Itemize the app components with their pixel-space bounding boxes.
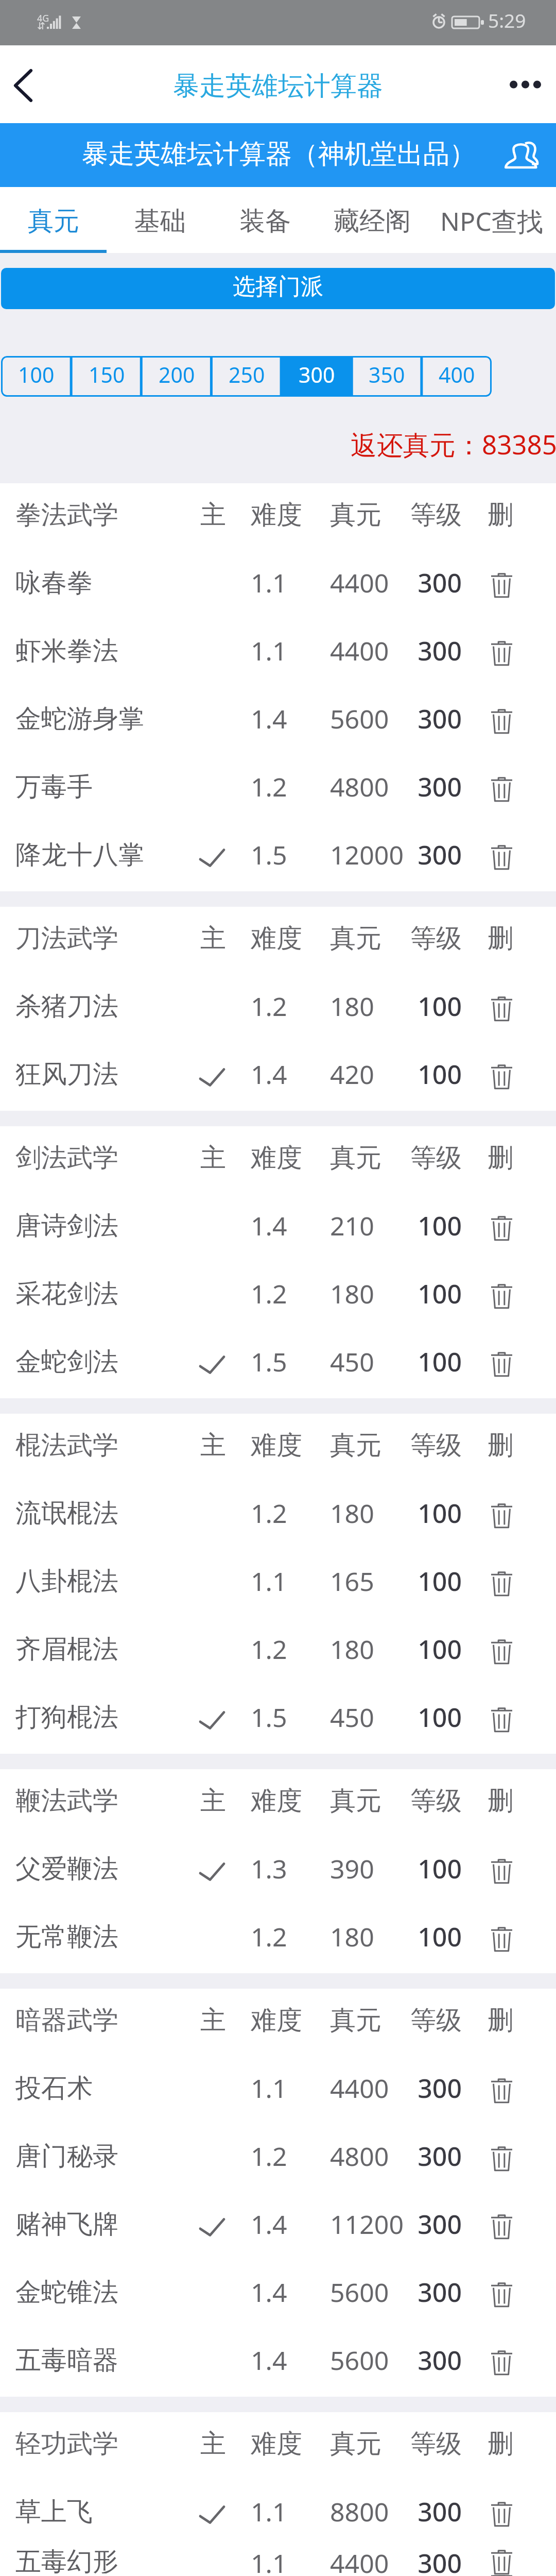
- button[interactable]: Delete: [473, 2486, 530, 2543]
- button[interactable]: 赌神飞牌: [0, 2193, 556, 2261]
- button[interactable]: 金蛇游身掌: [0, 687, 556, 755]
- button[interactable]: 400: [422, 356, 492, 397]
- button[interactable]: Delete: [473, 693, 530, 750]
- button[interactable]: Delete: [473, 761, 530, 818]
- button[interactable]: 基础: [107, 187, 213, 250]
- button[interactable]: 300: [282, 356, 352, 397]
- button[interactable]: 100: [1, 356, 72, 397]
- staticText: 5600: [330, 2343, 389, 2378]
- staticText: 投石术: [15, 2072, 93, 2105]
- button[interactable]: 无常鞭法: [0, 1905, 556, 1973]
- button[interactable]: 装备: [213, 187, 317, 250]
- staticText: 100: [418, 1700, 462, 1735]
- button[interactable]: Delete: [473, 557, 530, 614]
- staticText: 暴走英雄坛计算器（神机堂出品）: [82, 138, 476, 171]
- button[interactable]: 草上飞: [0, 2480, 556, 2548]
- button[interactable]: Delete: [473, 1691, 530, 1748]
- button[interactable]: 八卦棍法: [0, 1550, 556, 1618]
- staticText: 100: [418, 1344, 462, 1379]
- staticText: 齐眉棍法: [15, 1633, 118, 1666]
- staticText: 180: [330, 1919, 374, 1954]
- button[interactable]: Delete: [473, 1048, 530, 1105]
- staticText: 装备: [239, 205, 291, 238]
- button[interactable]: 投石术: [0, 2057, 556, 2125]
- staticText: 12000: [330, 837, 404, 872]
- staticText: 4400: [330, 2071, 389, 2106]
- button[interactable]: 父爱鞭法: [0, 1837, 556, 1905]
- staticText: 300: [418, 633, 462, 668]
- staticText: 暴走英雄坛计算器: [173, 70, 383, 103]
- staticText: 唐门秘录: [15, 2140, 118, 2173]
- button[interactable]: 采花剑法: [0, 1262, 556, 1330]
- button[interactable]: 200: [142, 356, 212, 397]
- staticText: 300: [418, 2139, 462, 2174]
- staticText: 420: [330, 1057, 374, 1092]
- staticText: 唐诗剑法: [15, 1210, 118, 1242]
- staticText: 主: [200, 2428, 226, 2460]
- button[interactable]: 五毒幻形: [0, 2548, 556, 2576]
- button[interactable]: 流氓棍法: [0, 1482, 556, 1550]
- staticText: 真元: [28, 205, 79, 238]
- button[interactable]: Delete: [473, 2130, 530, 2187]
- button[interactable]: Delete: [473, 1487, 530, 1544]
- staticText: 等级: [410, 1429, 462, 1462]
- button[interactable]: 五毒暗器: [0, 2329, 556, 2397]
- staticText: 轻功武学: [15, 2428, 118, 2460]
- staticText: 300: [418, 701, 462, 736]
- button[interactable]: 藏经阁: [317, 187, 427, 250]
- staticText: 流氓棍法: [15, 1497, 118, 1530]
- button[interactable]: 金蛇剑法: [0, 1330, 556, 1398]
- button[interactable]: 350: [352, 356, 422, 397]
- button[interactable]: 唐门秘录: [0, 2125, 556, 2193]
- button[interactable]: 杀猪刀法: [0, 975, 556, 1043]
- button[interactable]: Members: [507, 141, 537, 168]
- button[interactable]: Delete: [473, 625, 530, 682]
- button[interactable]: 虾米拳法: [0, 619, 556, 687]
- staticText: 删: [488, 1785, 513, 1817]
- button[interactable]: 降龙十八掌: [0, 823, 556, 891]
- staticText: 真元: [330, 1429, 381, 1462]
- button[interactable]: 250: [212, 356, 282, 397]
- staticText: 虾米拳法: [15, 635, 118, 667]
- staticText: 200: [159, 360, 195, 389]
- button[interactable]: Delete: [473, 1623, 530, 1680]
- staticText: 删: [488, 1142, 513, 1174]
- button[interactable]: More options: [484, 45, 556, 123]
- button[interactable]: Delete: [473, 2198, 530, 2255]
- button[interactable]: Delete: [473, 1268, 530, 1325]
- staticText: 5:29: [488, 7, 526, 33]
- staticText: 300: [418, 2071, 462, 2106]
- button[interactable]: 万毒手: [0, 755, 556, 823]
- button[interactable]: Back: [0, 45, 62, 123]
- button[interactable]: Delete: [473, 2548, 530, 2576]
- staticText: 主: [200, 1142, 226, 1174]
- button[interactable]: NPC查找: [427, 187, 556, 250]
- staticText: 300: [418, 2207, 462, 2242]
- button[interactable]: 150: [72, 356, 142, 397]
- button[interactable]: Delete: [473, 1911, 530, 1968]
- staticText: 4800: [330, 2139, 389, 2174]
- staticText: 金蛇锥法: [15, 2276, 118, 2309]
- button[interactable]: Delete: [473, 1555, 530, 1612]
- button[interactable]: Delete: [473, 1200, 530, 1257]
- button[interactable]: 打狗棍法: [0, 1686, 556, 1754]
- button[interactable]: Delete: [473, 829, 530, 886]
- button[interactable]: Delete: [473, 2334, 530, 2391]
- button[interactable]: 金蛇锥法: [0, 2261, 556, 2329]
- button[interactable]: Delete: [473, 980, 530, 1037]
- button[interactable]: Delete: [473, 1843, 530, 1900]
- button[interactable]: 真元: [0, 187, 107, 250]
- staticText: 1.2: [251, 1496, 287, 1531]
- button[interactable]: Delete: [473, 2266, 530, 2323]
- button[interactable]: 选择门派: [1, 268, 555, 309]
- button[interactable]: Delete: [473, 1336, 530, 1393]
- button[interactable]: Delete: [473, 2062, 530, 2119]
- staticText: 主: [200, 1429, 226, 1462]
- staticText: 主: [200, 499, 226, 531]
- staticText: 1.1: [251, 633, 287, 668]
- button[interactable]: 狂风刀法: [0, 1043, 556, 1111]
- staticText: 五毒暗器: [15, 2344, 118, 2377]
- button[interactable]: 咏春拳: [0, 551, 556, 619]
- button[interactable]: 唐诗剑法: [0, 1194, 556, 1262]
- button[interactable]: 齐眉棍法: [0, 1618, 556, 1686]
